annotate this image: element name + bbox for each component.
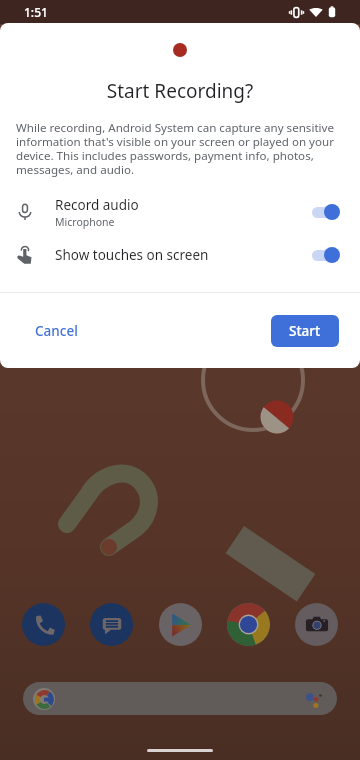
staticText: Start Recording? — [0, 78, 360, 104]
button[interactable]: Show touches on screen — [0, 234, 360, 276]
button[interactable]: Cancel — [27, 315, 86, 347]
button[interactable] — [23, 682, 337, 715]
button[interactable]: Play Store — [159, 603, 202, 646]
button[interactable]: Start — [271, 315, 339, 347]
button[interactable]: Chrome — [227, 603, 270, 646]
button[interactable]: Record audio — [0, 190, 360, 234]
staticText: Microphone — [55, 215, 115, 229]
staticText: 1:51 — [24, 4, 48, 20]
staticText: Show touches on screen — [55, 246, 209, 264]
button[interactable]: Phone — [22, 603, 65, 646]
staticText: Record audio — [55, 196, 139, 214]
staticText: Start — [289, 322, 321, 340]
staticText: While recording, Android System can capt… — [16, 120, 352, 177]
staticText: Cancel — [35, 322, 78, 340]
button[interactable]: Camera — [295, 603, 338, 646]
button[interactable]: Messages — [90, 603, 133, 646]
